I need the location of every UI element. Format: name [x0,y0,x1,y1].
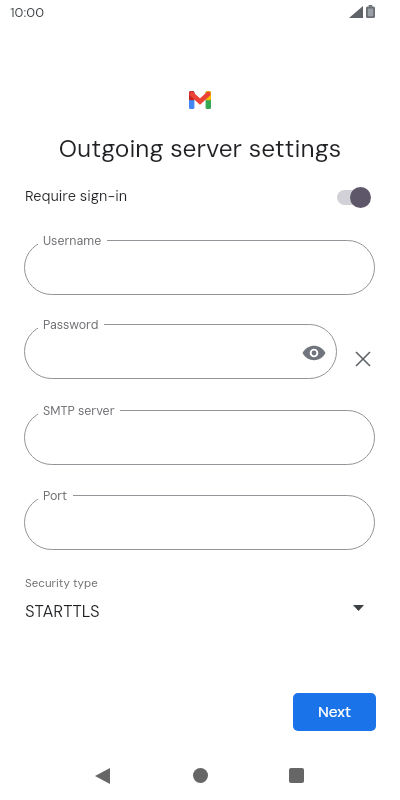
staticText: Password [43,317,99,333]
button[interactable]: Next [293,693,376,731]
staticText: Outgoing server settings [0,133,400,165]
staticText: 10:00 [10,4,45,22]
button[interactable]: Recent apps [272,752,320,800]
button[interactable]: Port [24,487,375,550]
staticText: Username [43,233,102,249]
button[interactable]: Home [176,752,224,800]
button[interactable]: Security type [0,570,400,630]
button[interactable]: Back [78,752,126,800]
staticText: Next [318,702,352,722]
staticText: Require sign-in [25,187,128,206]
staticText: Port [43,488,68,504]
staticText: SMTP server [43,403,115,419]
button[interactable]: Clear [348,344,377,373]
button[interactable]: Show password [300,339,328,367]
button[interactable]: Username [24,232,375,295]
button[interactable]: Password [24,316,337,379]
staticText: Security type [25,576,98,591]
staticText: STARTTLS [25,601,100,622]
button[interactable]: Require sign-in [0,180,400,212]
button[interactable]: SMTP server [24,402,375,465]
